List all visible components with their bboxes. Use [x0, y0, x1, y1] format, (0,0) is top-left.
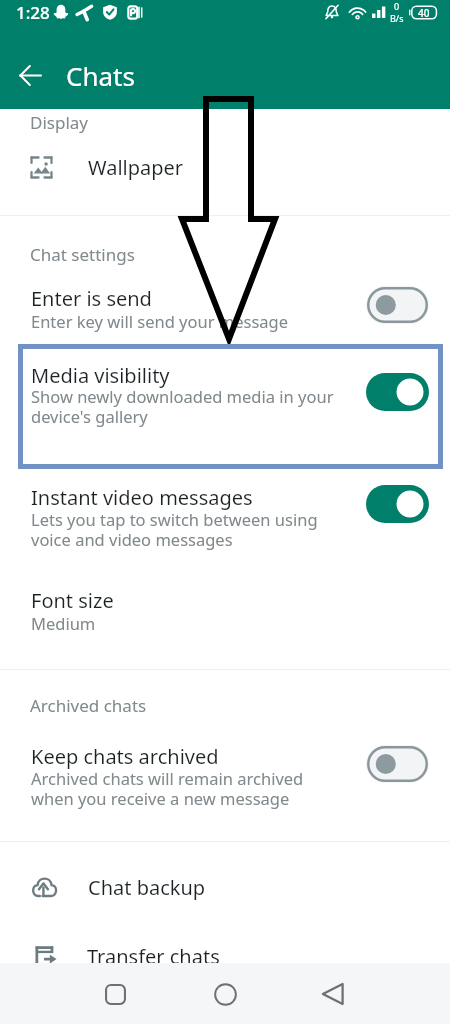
button[interactable]: Enter is send	[0, 273, 450, 329]
button[interactable]: Media visibility	[0, 350, 450, 430]
button[interactable]: Switch on	[366, 485, 429, 523]
staticText: Archived chats will remain archived when…	[31, 767, 304, 810]
button[interactable]: Switch off	[366, 745, 429, 783]
button[interactable]: Wallpaper	[0, 143, 450, 191]
staticText: Wallpaper	[88, 154, 184, 181]
button[interactable]: Back	[306, 967, 360, 1021]
staticText: Display	[30, 111, 88, 134]
button[interactable]: Instant video messages	[0, 472, 450, 552]
staticText: 1:28	[16, 1, 50, 24]
staticText: Archived chats	[30, 694, 147, 717]
button[interactable]: Back	[2, 47, 58, 103]
staticText: B/s	[390, 12, 404, 24]
staticText: Transfer chats	[87, 943, 220, 970]
staticText: Chat backup	[88, 874, 206, 901]
button[interactable]: Chat backup	[0, 862, 450, 912]
staticText: Show newly downloaded media in your devi…	[31, 385, 334, 428]
staticText: Font size	[31, 587, 114, 614]
staticText: 40	[418, 6, 430, 20]
button[interactable]: Switch off	[366, 286, 429, 324]
button[interactable]: Recent apps	[88, 967, 142, 1021]
button[interactable]: Keep chats archived	[0, 731, 450, 811]
staticText: Chat settings	[30, 243, 135, 266]
staticText: Enter is send	[31, 285, 152, 312]
staticText: Lets you tap to switch between using voi…	[31, 508, 318, 551]
staticText: Instant video messages	[31, 484, 253, 511]
staticText: Enter key will send your message	[31, 310, 289, 332]
staticText: 0	[394, 0, 400, 12]
button[interactable]: Font size	[0, 578, 450, 644]
staticText: Keep chats archived	[31, 743, 219, 770]
button[interactable]: Home	[198, 967, 252, 1021]
staticText: Media visibility	[31, 362, 170, 389]
button[interactable]: Transfer chats	[0, 931, 450, 981]
staticText: Medium	[31, 612, 96, 634]
staticText: Chats	[66, 58, 135, 93]
button[interactable]: Switch on	[366, 373, 429, 411]
